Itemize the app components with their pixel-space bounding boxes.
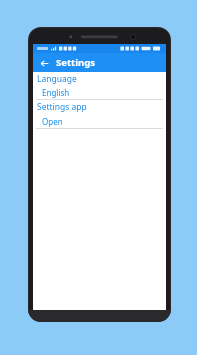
button[interactable]: Settings app [33, 100, 166, 114]
button[interactable]: Language [33, 72, 166, 85]
button[interactable]: English [33, 85, 166, 99]
button[interactable]: Back [36, 55, 52, 71]
staticText: Language [37, 73, 77, 85]
staticText: English [42, 87, 70, 98]
staticText: Open [42, 116, 63, 127]
staticText: Settings [56, 56, 95, 69]
button[interactable]: Open [33, 114, 166, 128]
staticText: Settings app [37, 101, 87, 113]
